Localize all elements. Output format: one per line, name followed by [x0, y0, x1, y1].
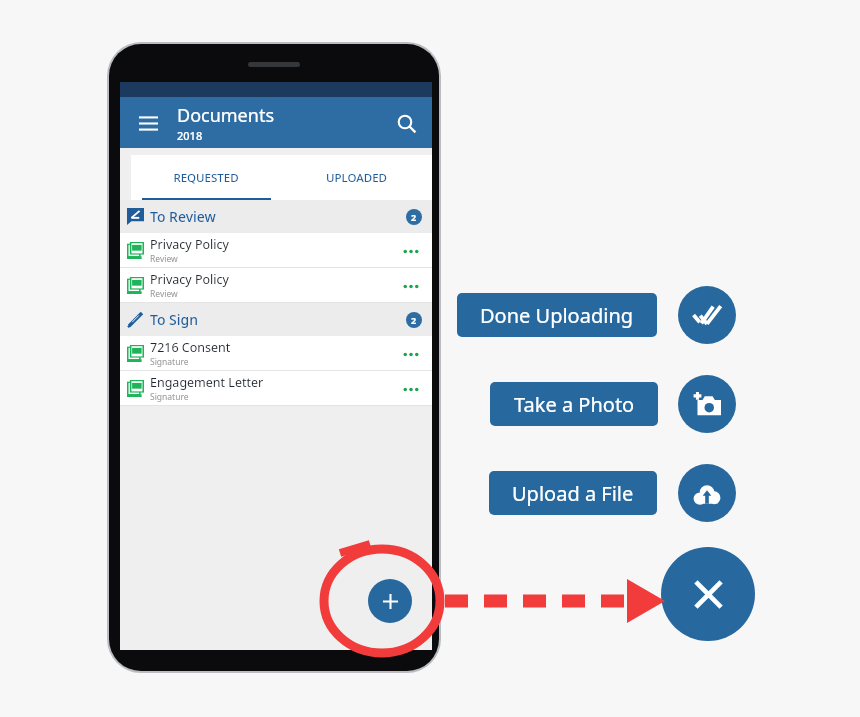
- button[interactable]: Upload a file: [678, 464, 736, 522]
- button[interactable]: Close menu: [661, 547, 755, 641]
- staticText: Done Uploading: [480, 302, 634, 329]
- staticText: Engagement Letter: [150, 374, 264, 391]
- button[interactable]: Take a photo: [678, 375, 736, 433]
- staticText: Signature: [150, 391, 189, 403]
- staticText: Take a Photo: [514, 391, 635, 418]
- staticText: To Review: [150, 207, 216, 226]
- button[interactable]: Done uploading: [678, 286, 736, 344]
- staticText: Review: [150, 288, 178, 300]
- button[interactable]: 7216 Consent: [120, 336, 432, 371]
- staticText: REQUESTED: [173, 170, 239, 186]
- staticText: Review: [150, 253, 178, 265]
- staticText: 2018: [177, 128, 203, 143]
- staticText: Documents: [177, 103, 275, 128]
- button[interactable]: Privacy Policy: [120, 233, 432, 268]
- button[interactable]: More options for Engagement Letter: [394, 372, 428, 406]
- button[interactable]: More options for Privacy Policy: [394, 269, 428, 303]
- button[interactable]: Done Uploading: [457, 293, 657, 337]
- button[interactable]: Upload a File: [489, 471, 657, 515]
- button[interactable]: More options for Privacy Policy: [394, 234, 428, 268]
- staticText: Privacy Policy: [150, 236, 229, 253]
- button[interactable]: To Sign: [120, 303, 432, 336]
- button[interactable]: Take a Photo: [490, 382, 658, 426]
- button[interactable]: REQUESTED: [131, 155, 281, 200]
- button[interactable]: UPLOADED: [281, 155, 432, 200]
- staticText: Upload a File: [512, 480, 634, 507]
- staticText: Privacy Policy: [150, 271, 229, 288]
- button[interactable]: Open navigation menu: [128, 103, 168, 143]
- staticText: 2: [411, 211, 417, 223]
- button[interactable]: Privacy Policy: [120, 268, 432, 303]
- staticText: 2: [411, 314, 417, 326]
- staticText: To Sign: [150, 310, 199, 329]
- button[interactable]: More options for 7216 Consent: [394, 337, 428, 371]
- button[interactable]: Add document: [368, 579, 412, 623]
- button[interactable]: To Review: [120, 200, 432, 233]
- button[interactable]: Engagement Letter: [120, 371, 432, 406]
- staticText: 7216 Consent: [150, 339, 231, 356]
- staticText: Signature: [150, 356, 189, 368]
- button[interactable]: Search: [386, 103, 426, 143]
- staticText: UPLOADED: [326, 170, 387, 186]
